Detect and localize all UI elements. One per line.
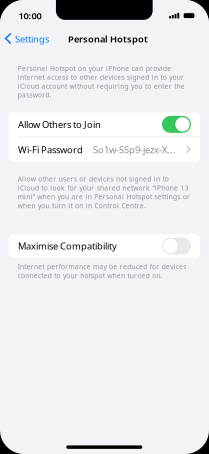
staticText: Personal Hotspot	[68, 33, 148, 45]
staticText: Personal Hotspot on your iPhone can prov…	[18, 64, 185, 99]
staticText: Settings	[15, 33, 49, 45]
staticText: Wi-Fi Password	[18, 143, 83, 156]
staticText: So1w-SSp9-jezx-X...	[93, 143, 176, 156]
staticText: Maximise Compatibility	[18, 240, 117, 252]
staticText: Allow Others to Join	[18, 118, 101, 131]
button[interactable]: Allow Others to Join	[9, 112, 200, 137]
button[interactable]: Wi-Fi Password	[9, 137, 200, 162]
staticText: Internet performance may be reduced for …	[18, 262, 186, 280]
staticText: 10:00	[18, 9, 41, 22]
button[interactable]: Maximise Compatibility	[9, 234, 200, 258]
staticText: Allow other users or devices not signed …	[18, 175, 190, 210]
button[interactable]: Settings	[0, 28, 60, 50]
